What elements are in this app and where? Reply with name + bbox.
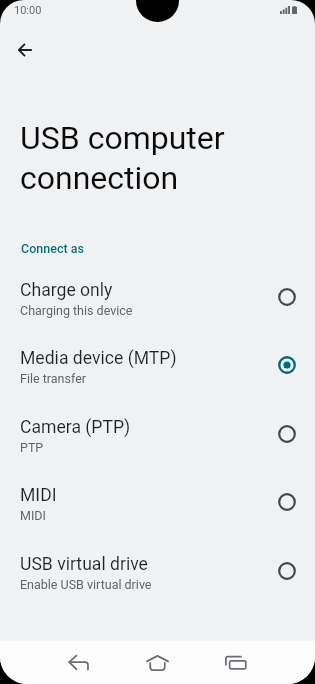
button[interactable]: Recent apps: [214, 640, 257, 683]
button[interactable]: USB virtual drive: [0, 548, 315, 616]
button[interactable]: Media device (MTP): [0, 342, 315, 410]
button[interactable]: Back: [57, 641, 100, 684]
staticText: Charge only: [20, 280, 113, 301]
staticText: USB computer connection: [20, 119, 225, 196]
staticText: Media device (MTP): [20, 348, 177, 369]
staticText: File transfer: [20, 371, 87, 386]
staticText: Charging this device: [20, 303, 133, 318]
button[interactable]: Back: [4, 29, 45, 70]
button[interactable]: Camera (PTP): [0, 411, 315, 479]
button[interactable]: Charge only: [0, 274, 315, 342]
staticText: MIDI: [20, 508, 46, 523]
staticText: Enable USB virtual drive: [20, 577, 152, 592]
button[interactable]: MIDI: [0, 479, 315, 547]
staticText: PTP: [20, 440, 44, 455]
staticText: Connect as: [21, 241, 84, 256]
button[interactable]: Home: [136, 641, 179, 684]
staticText: Camera (PTP): [20, 417, 131, 438]
staticText: USB virtual drive: [20, 554, 148, 575]
staticText: 10:00: [14, 4, 42, 17]
staticText: MIDI: [20, 485, 57, 506]
